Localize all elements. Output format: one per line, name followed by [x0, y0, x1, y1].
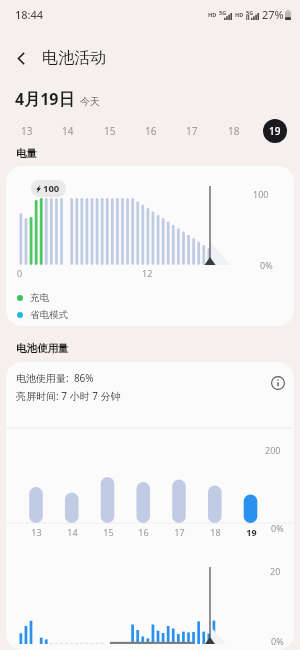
button[interactable]: 13 — [15, 119, 39, 143]
button[interactable]: 14 — [56, 119, 80, 143]
staticText: 0% — [271, 635, 284, 647]
staticText: 12 — [142, 267, 153, 279]
staticText: 0 — [17, 267, 23, 279]
staticText: 电池使用量 — [16, 342, 69, 355]
staticText: 电量 — [16, 147, 37, 160]
staticText: 16 — [145, 124, 157, 138]
staticText: 18 — [210, 526, 221, 538]
button[interactable]: 19 — [263, 119, 287, 143]
staticText: 16 — [138, 526, 149, 538]
button[interactable]: 16 — [139, 119, 163, 143]
staticText: 15 — [103, 526, 114, 538]
staticText: 4月19日 — [15, 88, 75, 110]
staticText: 19 — [269, 124, 281, 138]
button[interactable]: 17 — [180, 119, 204, 143]
staticText: 100 — [43, 182, 60, 195]
staticText: 5G — [246, 9, 254, 16]
staticText: HD — [208, 11, 217, 18]
staticText: 100 — [253, 188, 269, 200]
staticText: 17 — [174, 526, 185, 538]
staticText: 18:44 — [15, 7, 44, 22]
button[interactable]: Back — [0, 42, 42, 74]
staticText: 17 — [186, 124, 198, 138]
staticText: 13 — [21, 124, 33, 138]
staticText: 14 — [67, 526, 78, 538]
staticText: 电池使用量: 86% — [16, 371, 94, 385]
staticText: HD — [235, 11, 244, 18]
staticText: 0% — [271, 522, 284, 534]
staticText: 电池活动 — [42, 48, 106, 68]
button[interactable]: 15 — [98, 119, 122, 143]
button[interactable]: Info — [265, 370, 290, 395]
staticText: 亮屏时间: 7 小时 7 分钟 — [16, 389, 121, 403]
staticText: 18 — [228, 124, 240, 138]
staticText: 200 — [265, 444, 281, 456]
staticText: 19 — [246, 526, 257, 538]
staticText: 省电模式 — [30, 309, 68, 321]
staticText: 13 — [31, 526, 42, 538]
staticText: 20 — [270, 565, 281, 577]
staticText: 0% — [260, 259, 273, 271]
staticText: 5G — [219, 9, 227, 16]
staticText: 15 — [104, 124, 116, 138]
staticText: 今天 — [80, 95, 100, 108]
staticText: 14 — [62, 124, 74, 138]
staticText: 充电 — [30, 292, 49, 304]
staticText: 27% — [262, 7, 284, 22]
button[interactable]: 18 — [222, 119, 246, 143]
